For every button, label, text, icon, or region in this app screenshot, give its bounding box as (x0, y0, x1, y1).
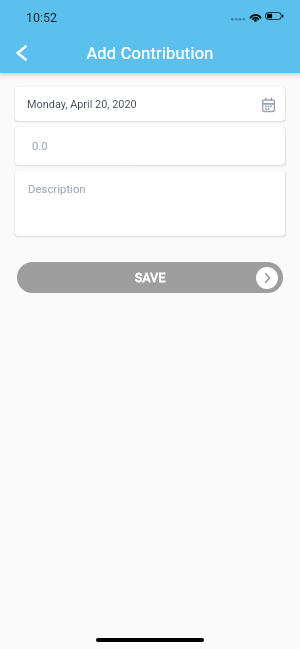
staticText: 0.0 (32, 140, 48, 153)
button[interactable]: Pick date (262, 97, 275, 112)
staticText: Add Contribution (0, 44, 300, 63)
button[interactable]: SAVE (17, 262, 283, 293)
staticText: Monday, April 20, 2020 (27, 98, 137, 111)
button[interactable]: Back (6, 38, 36, 68)
button[interactable]: 0.0 (15, 127, 285, 165)
staticText: Description (28, 182, 86, 195)
staticText: SAVE (135, 271, 166, 285)
staticText: 10:52 (26, 10, 58, 25)
button[interactable]: Description (15, 171, 285, 236)
button[interactable]: Monday, April 20, 2020 (15, 87, 285, 121)
